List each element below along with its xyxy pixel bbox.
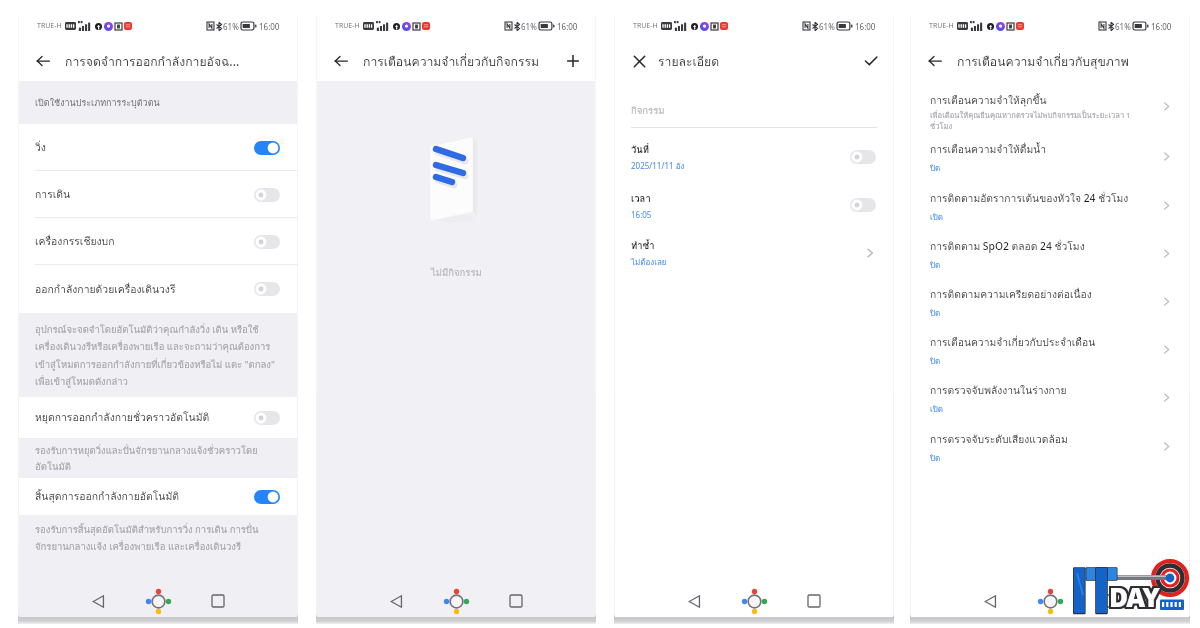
button[interactable] — [30, 48, 56, 74]
staticText: DAY — [1108, 578, 1158, 613]
staticText: 16:00 — [259, 21, 280, 32]
staticText: DAY — [1110, 577, 1160, 612]
button[interactable]: การเตือนความจำให้ลุกขึ้น — [911, 81, 1189, 132]
button[interactable] — [328, 48, 354, 74]
staticText: อุปกรณ์จะจดจำโดยอัตโนมัติว่าคุณกำลังวิ่ง… — [35, 322, 281, 389]
staticText: DAY — [1109, 577, 1159, 612]
staticText: การเตือนความจำเกี่ยวกับประจำเดือน — [930, 334, 1096, 350]
staticText: DAY — [1107, 577, 1157, 612]
button[interactable]: Switch off — [850, 150, 876, 164]
staticText: เวลา — [631, 191, 651, 206]
staticText: DAY — [1110, 581, 1160, 616]
button[interactable]: การเตือนความจำเกี่ยวกับประจำเดือน — [911, 325, 1189, 373]
button[interactable]: วันที่ — [615, 133, 893, 181]
button[interactable] — [626, 48, 652, 74]
button[interactable]: Switch off — [254, 235, 280, 249]
button[interactable]: Recents — [205, 588, 231, 614]
staticText: DAY — [1110, 578, 1160, 613]
button[interactable]: Recents — [1097, 588, 1123, 614]
staticText: การติดตามอัตราการเต้นของหัวใจ 24 ชั่วโมง — [930, 190, 1129, 206]
staticText: 16:00 — [557, 21, 578, 32]
button[interactable]: Back — [383, 588, 409, 614]
button[interactable]: การติดตามอัตราการเต้นของหัวใจ 24 ชั่วโมง — [911, 181, 1189, 229]
button[interactable]: การเดิน — [19, 171, 297, 218]
button[interactable]: การติดตามความเครียดอย่างต่อเนื่อง — [911, 277, 1189, 325]
staticText: TRUE-H — [633, 21, 658, 31]
staticText: 61% — [521, 21, 537, 32]
button[interactable]: Add reminder — [562, 50, 584, 72]
other: Save — [860, 50, 882, 72]
staticText: 16:00 — [1151, 21, 1172, 32]
staticText: 61% — [819, 21, 835, 32]
button[interactable]: การตรวจจับระดับเสียงแวดล้อม — [911, 422, 1189, 470]
button[interactable]: Switch on — [254, 141, 280, 155]
staticText: เปิด — [930, 211, 944, 224]
button[interactable] — [922, 48, 948, 74]
button[interactable]: การตรวจจับพลังงานในร่างกาย — [911, 373, 1189, 422]
staticText: การเตือนความจำให้ดื่มน้ำ — [930, 141, 1047, 157]
staticText: การตรวจจับพลังงานในร่างกาย — [930, 382, 1067, 398]
button[interactable]: ทำซ้ำ — [615, 229, 893, 277]
staticText: การติดตาม SpO2 ตลอด 24 ชั่วโมง — [930, 238, 1085, 254]
staticText: ปิด — [930, 162, 941, 175]
staticText: DAY — [1107, 579, 1157, 614]
staticText: DAY — [1107, 580, 1157, 615]
staticText: DAY — [1109, 580, 1159, 615]
staticText: รองรับการสิ้นสุดอัตโนมัติสำหรับการวิ่ง ก… — [35, 522, 281, 554]
button[interactable]: หยุดการออกกำลังกายชั่วคราวอัตโนมัติ — [19, 397, 297, 438]
staticText: การเดิน — [35, 186, 71, 203]
button[interactable]: Switch off — [254, 188, 280, 202]
button[interactable]: การเตือนความจำให้ดื่มน้ำ — [911, 132, 1189, 181]
staticText: DAY — [1111, 577, 1161, 612]
button[interactable]: Assistant — [740, 587, 768, 615]
staticText: 2025/11/11 อัง — [631, 160, 685, 173]
staticText: DAY — [1111, 581, 1161, 616]
button[interactable]: Assistant — [442, 587, 470, 615]
button[interactable]: Recents — [503, 588, 529, 614]
button[interactable]: Switch on — [254, 490, 280, 504]
button[interactable]: Save — [860, 50, 882, 72]
staticText: การจดจำการออกกำลังกายอัจฉ... — [65, 52, 240, 71]
button[interactable]: Assistant — [1036, 587, 1064, 615]
staticText: การติดตามความเครียดอย่างต่อเนื่อง — [930, 286, 1092, 302]
button[interactable]: วิ่ง — [19, 124, 297, 171]
button[interactable]: Switch off — [850, 198, 876, 212]
button[interactable]: Switch off — [254, 282, 280, 296]
staticText: วิ่ง — [35, 139, 46, 156]
staticText: หยุดการออกกำลังกายชั่วคราวอัตโนมัติ — [35, 409, 210, 426]
button[interactable]: Assistant — [144, 587, 172, 615]
staticText: TRUE-H — [37, 21, 62, 31]
staticText: ไม่มีกิจกรรม — [431, 265, 482, 280]
staticText: DAY — [1111, 579, 1161, 614]
staticText: เปิด — [930, 403, 944, 416]
button[interactable]: Back — [977, 588, 1003, 614]
staticText: DAY — [1108, 579, 1158, 614]
staticText: การเตือนความจำเกี่ยวกับกิจกรรม — [363, 52, 540, 71]
staticText: สิ้นสุดการออกกำลังกายอัตโนมัติ — [35, 488, 180, 505]
staticText: เครื่องกรรเชียงบก — [35, 233, 115, 250]
staticText: DAY — [1107, 578, 1157, 613]
staticText: วันที่ — [631, 142, 650, 157]
other: Add reminder — [562, 50, 584, 72]
button[interactable]: การติดตาม SpO2 ตลอด 24 ชั่วโมง — [911, 229, 1189, 277]
staticText: ปิด — [930, 259, 941, 272]
button[interactable]: Switch off — [254, 411, 280, 425]
staticText: DAY — [1110, 579, 1160, 614]
staticText: DAY — [1111, 578, 1161, 613]
staticText: ทำซ้ำ — [631, 238, 655, 253]
button[interactable]: Recents — [801, 588, 827, 614]
staticText: DAY — [1110, 580, 1160, 615]
staticText: ไม่ต้องเลย — [631, 256, 667, 269]
staticText: การตรวจจับระดับเสียงแวดล้อม — [930, 431, 1068, 447]
staticText: การเตือนความจำเกี่ยวกับสุขภาพ — [957, 52, 1129, 71]
button[interactable]: เครื่องกรรเชียงบก — [19, 218, 297, 265]
button[interactable]: ออกกำลังกายด้วยเครื่องเดินวงรี — [19, 265, 297, 313]
button[interactable]: เวลา — [615, 181, 893, 229]
staticText: DAY — [1108, 581, 1158, 616]
staticText: ปิด — [930, 307, 941, 320]
button[interactable]: สิ้นสุดการออกกำลังกายอัตโนมัติ — [19, 478, 297, 515]
button[interactable]: Back — [681, 588, 707, 614]
button[interactable]: Back — [85, 588, 111, 614]
staticText: DAY — [1109, 581, 1159, 616]
staticText: ออกกำลังกายด้วยเครื่องเดินวงรี — [35, 281, 176, 298]
